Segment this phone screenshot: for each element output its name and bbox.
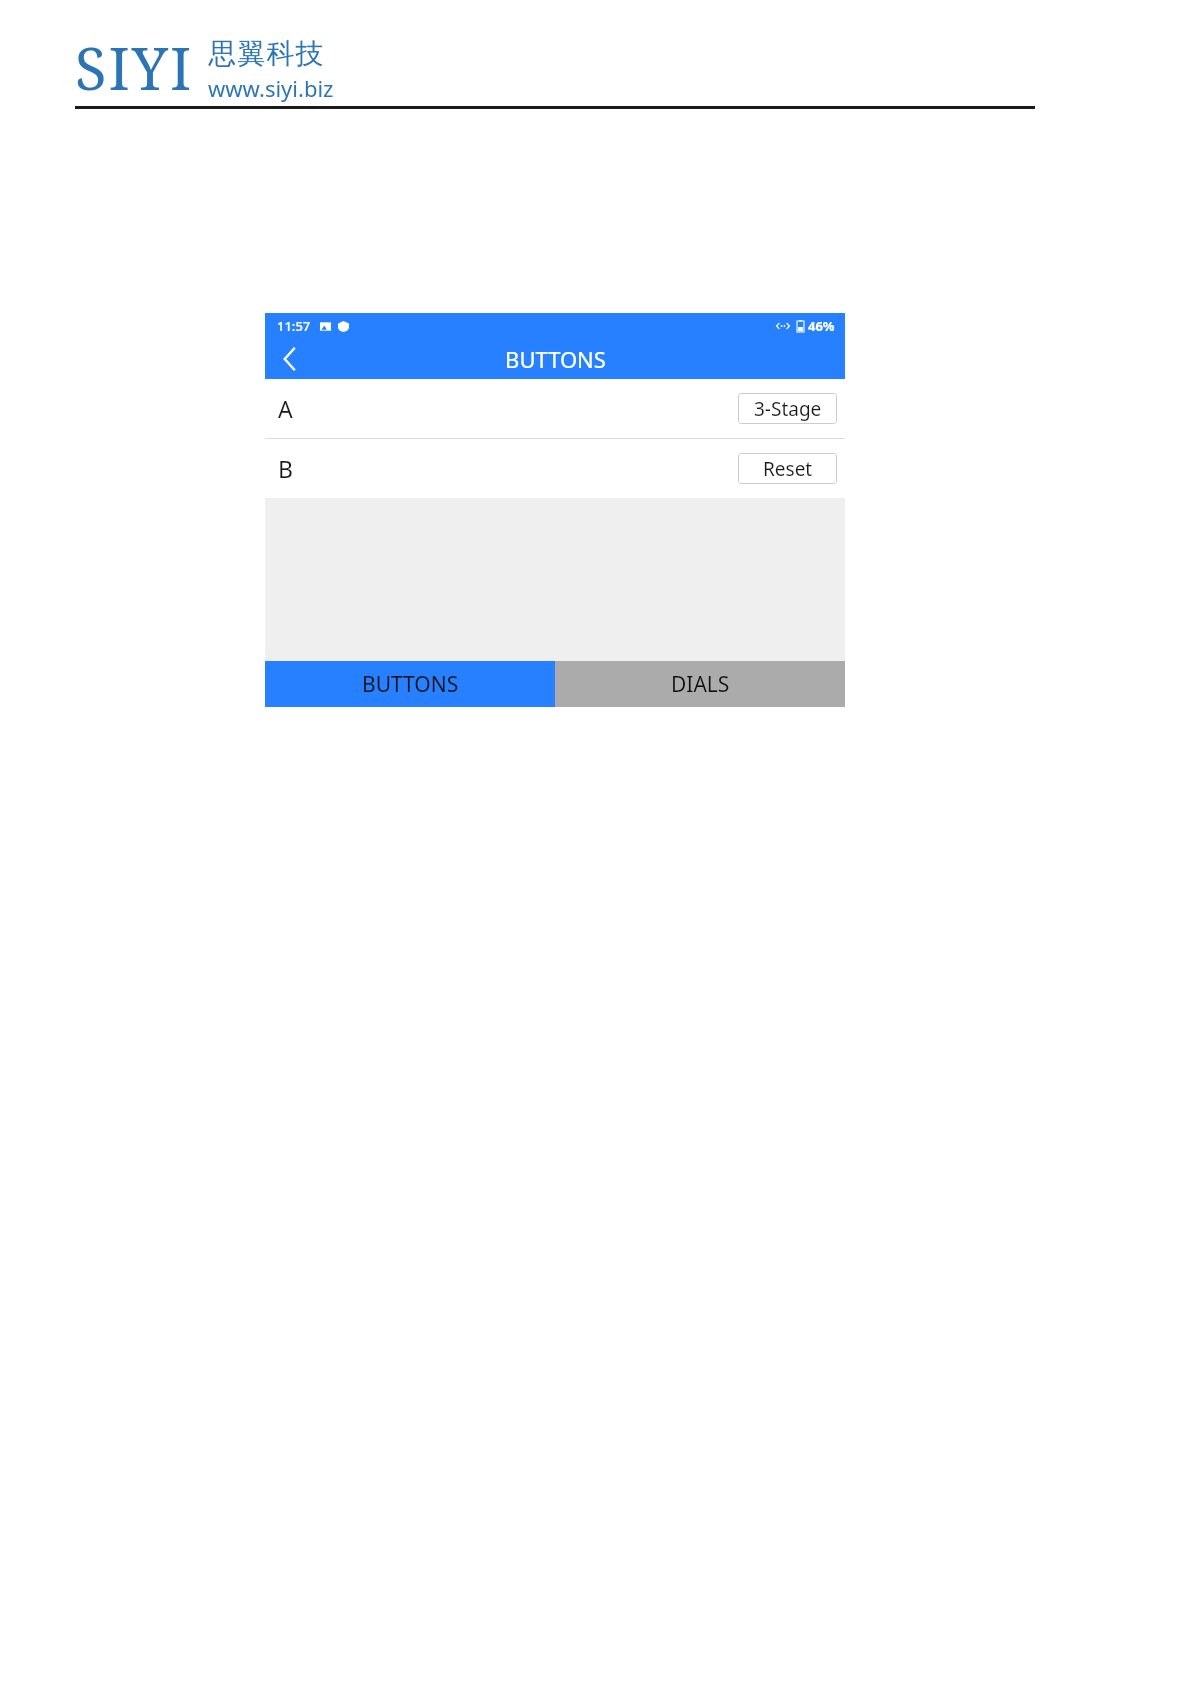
staticText: A <box>278 393 293 424</box>
staticText: 3-Stage <box>754 396 822 422</box>
staticText: SIYI <box>75 28 194 107</box>
button[interactable]: A <box>265 379 845 438</box>
staticText: www.siyi.biz <box>208 73 334 103</box>
button[interactable]: Reset <box>738 453 837 484</box>
staticText: 11:57 <box>277 317 311 335</box>
staticText: DIALS <box>671 670 730 699</box>
button[interactable]: 3-Stage <box>738 393 837 424</box>
button[interactable]: B <box>265 439 845 498</box>
button[interactable]: DIALS <box>555 661 845 707</box>
staticText: 46% <box>808 317 835 335</box>
button[interactable]: BUTTONS <box>265 661 555 707</box>
staticText: B <box>278 453 293 484</box>
staticText: Reset <box>763 456 813 482</box>
staticText: 思翼科技 <box>208 36 324 71</box>
button[interactable]: Back <box>265 339 313 379</box>
staticText: BUTTONS <box>362 670 459 699</box>
staticText: BUTTONS <box>505 344 606 374</box>
